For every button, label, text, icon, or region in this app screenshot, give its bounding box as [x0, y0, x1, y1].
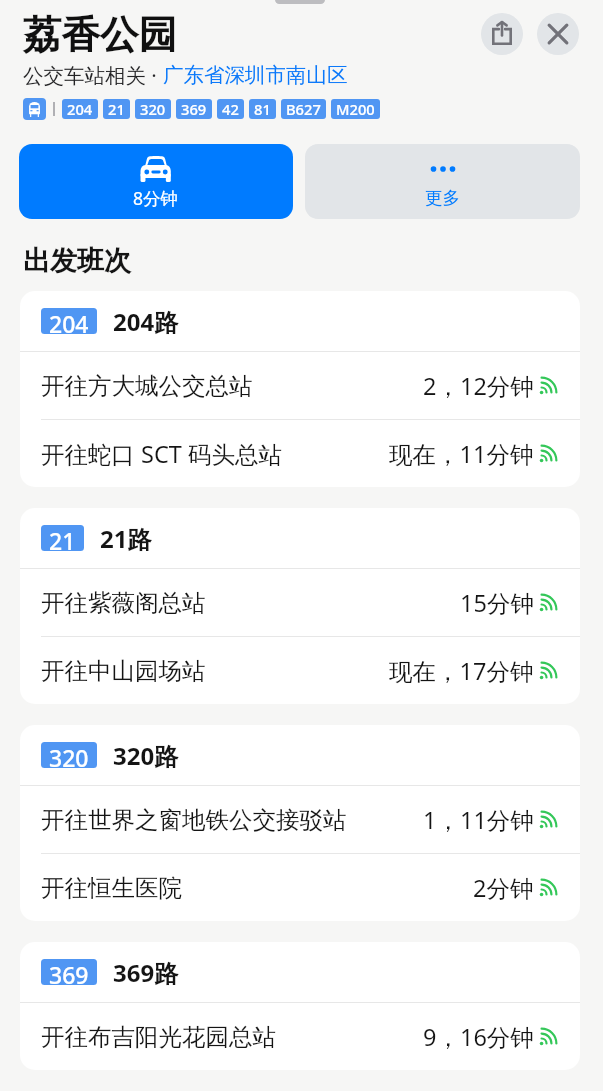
staticText: 21 [49, 525, 76, 551]
staticText: 开往恒生医院 [41, 873, 182, 903]
staticText: 81 [254, 99, 271, 119]
button[interactable]: 21 [20, 508, 580, 568]
button[interactable]: 开往方大城公交总站 [20, 352, 580, 419]
staticText: 21路 [100, 522, 152, 555]
button[interactable]: 开往中山园场站 [20, 637, 580, 704]
staticText: 369 [49, 959, 89, 985]
staticText: 现在，17分钟 [389, 655, 534, 687]
staticText: 现在，11分钟 [389, 438, 534, 470]
button[interactable]: 204 [20, 291, 580, 351]
button[interactable]: 开往蛇口 SCT 码头总站 [20, 420, 580, 487]
staticText: 更多 [425, 187, 460, 209]
button[interactable]: Close [537, 13, 579, 55]
staticText: 15分钟 [460, 587, 534, 619]
staticText: 320 [140, 99, 166, 119]
staticText: 开往蛇口 SCT 码头总站 [41, 438, 283, 470]
staticText: 320路 [113, 739, 179, 772]
staticText: 公交车站相关 · [23, 61, 163, 89]
button[interactable]: 320 [135, 99, 171, 119]
button[interactable]: B627 [281, 99, 326, 119]
button[interactable]: Share [481, 13, 523, 55]
staticText: 320 [49, 742, 89, 768]
button[interactable]: M200 [331, 99, 380, 119]
staticText: 369 [181, 99, 207, 119]
button[interactable]: 开往恒生医院 [20, 854, 580, 921]
staticText: 2分钟 [473, 872, 534, 904]
button[interactable]: 81 [249, 99, 276, 119]
staticText: 开往布吉阳光花园总站 [41, 1022, 276, 1052]
button[interactable]: 开往布吉阳光花园总站 [20, 1003, 580, 1070]
staticText: B627 [286, 99, 321, 119]
staticText: 9，16分钟 [423, 1021, 534, 1053]
staticText: 出发班次 [23, 244, 131, 278]
staticText: 21 [108, 99, 125, 119]
button[interactable]: 369 [20, 942, 580, 1002]
button[interactable]: 8分钟 [19, 144, 293, 219]
staticText: 荔香公园 [23, 11, 177, 60]
staticText: 开往中山园场站 [41, 656, 206, 686]
staticText: 广东省深圳市南山区 [163, 62, 348, 88]
button[interactable]: 204 [62, 99, 98, 119]
button[interactable]: 开往紫薇阁总站 [20, 569, 580, 636]
staticText: 2，12分钟 [423, 370, 534, 402]
staticText: 1，11分钟 [423, 804, 534, 836]
button[interactable]: 320 [20, 725, 580, 785]
staticText: 开往世界之窗地铁公交接驳站 [41, 805, 347, 835]
staticText: 8分钟 [133, 186, 179, 210]
staticText: 204 [67, 99, 93, 119]
button[interactable]: 开往世界之窗地铁公交接驳站 [20, 786, 580, 853]
staticText: M200 [336, 99, 375, 119]
button[interactable]: 42 [217, 99, 244, 119]
button[interactable]: 更多 [305, 144, 580, 219]
button[interactable]: 21 [103, 99, 130, 119]
button[interactable]: 369 [176, 99, 212, 119]
staticText: 开往方大城公交总站 [41, 371, 253, 401]
staticText: 开往紫薇阁总站 [41, 588, 206, 618]
staticText: 204 [49, 308, 89, 334]
staticText: 369路 [113, 956, 179, 989]
staticText: 42 [222, 99, 239, 119]
staticText: 204路 [113, 305, 179, 338]
